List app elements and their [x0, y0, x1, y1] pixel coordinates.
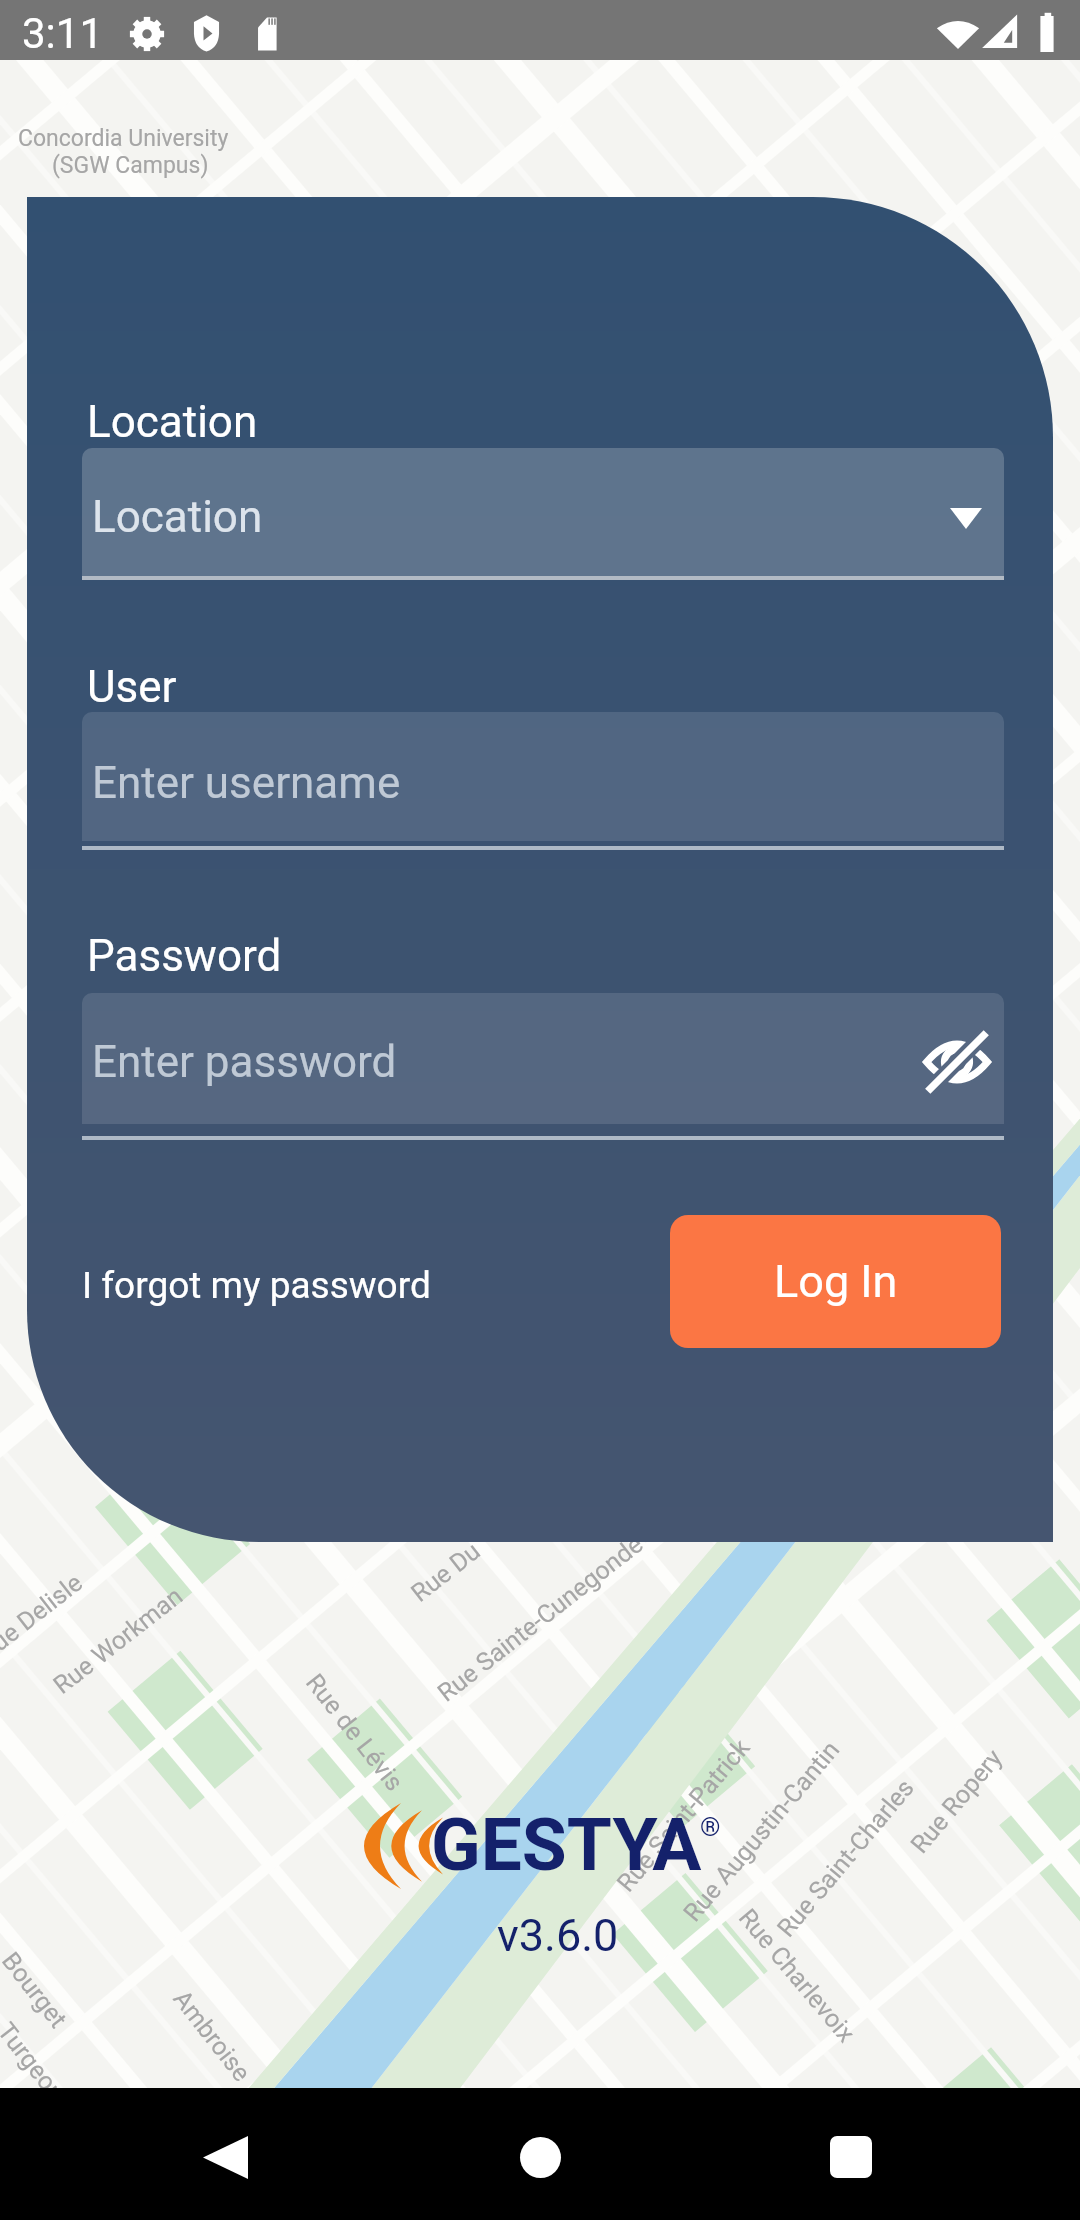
staticText: Rue Ropery: [905, 1743, 1009, 1859]
staticText: Log In: [774, 1255, 898, 1308]
staticText: Rue de Lévis: [300, 1668, 409, 1796]
staticText: Rue Augustin-Cantin: [678, 1735, 846, 1927]
button[interactable]: [82, 993, 1004, 1124]
button[interactable]: I forgot my password: [80, 1258, 433, 1313]
staticText: Location: [92, 491, 263, 543]
staticText: Rue Sainte-Cunegonde: [432, 1529, 648, 1707]
staticText: Ambroise: [167, 1985, 256, 2087]
staticText: Enter password: [92, 1036, 397, 1088]
staticText: Rue Delisle: [0, 1568, 88, 1666]
button[interactable]: [82, 712, 1004, 841]
staticText: Concordia University: [18, 125, 229, 152]
button[interactable]: Back: [166, 2110, 284, 2204]
staticText: Rue Du: [406, 1536, 486, 1608]
button[interactable]: Show password: [924, 1033, 990, 1091]
staticText: Password: [87, 930, 282, 982]
staticText: GESTYA: [431, 1802, 702, 1888]
staticText: I forgot my password: [82, 1264, 431, 1307]
staticText: v3.6.0: [497, 1909, 619, 1962]
staticText: Turgeon: [0, 2017, 71, 2107]
staticText: Rue Workman: [48, 1581, 189, 1700]
button[interactable]: [82, 448, 1004, 580]
staticText: ®: [700, 1812, 721, 1842]
staticText: Rue Saint-Charles: [771, 1773, 920, 1943]
staticText: Rue Charlevoix: [733, 1903, 861, 2048]
staticText: Bourget: [0, 1947, 73, 2034]
staticText: Location: [87, 396, 258, 448]
staticText: User: [87, 661, 177, 713]
button[interactable]: Recents: [792, 2110, 910, 2204]
staticText: Enter username: [92, 757, 401, 809]
staticText: 3:11: [22, 9, 103, 58]
staticText: Rue Saint-Patrick: [611, 1733, 755, 1897]
button[interactable]: Log In: [670, 1215, 1001, 1348]
staticText: (SGW Campus): [52, 152, 209, 179]
button[interactable]: Home: [481, 2110, 599, 2204]
